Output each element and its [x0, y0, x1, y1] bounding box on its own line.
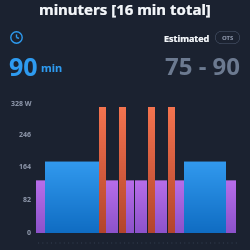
staticText: min — [41, 60, 63, 75]
staticText: 0 — [27, 228, 32, 238]
staticText: 82 — [23, 195, 32, 205]
staticText: 90 — [9, 49, 38, 79]
staticText: 164 — [19, 162, 32, 172]
button[interactable]: Duration — [10, 31, 23, 44]
staticText: 246 — [19, 130, 32, 140]
staticText: minuters [16 min total] — [39, 0, 211, 19]
staticText: 75 - 90 — [165, 49, 241, 79]
button[interactable]: OTS — [215, 31, 240, 44]
button[interactable]: minuters [16 min total] — [0, 0, 250, 24]
staticText: 328 W — [11, 99, 32, 109]
staticText: Estimated — [164, 32, 210, 44]
staticText: OTS — [222, 34, 234, 42]
